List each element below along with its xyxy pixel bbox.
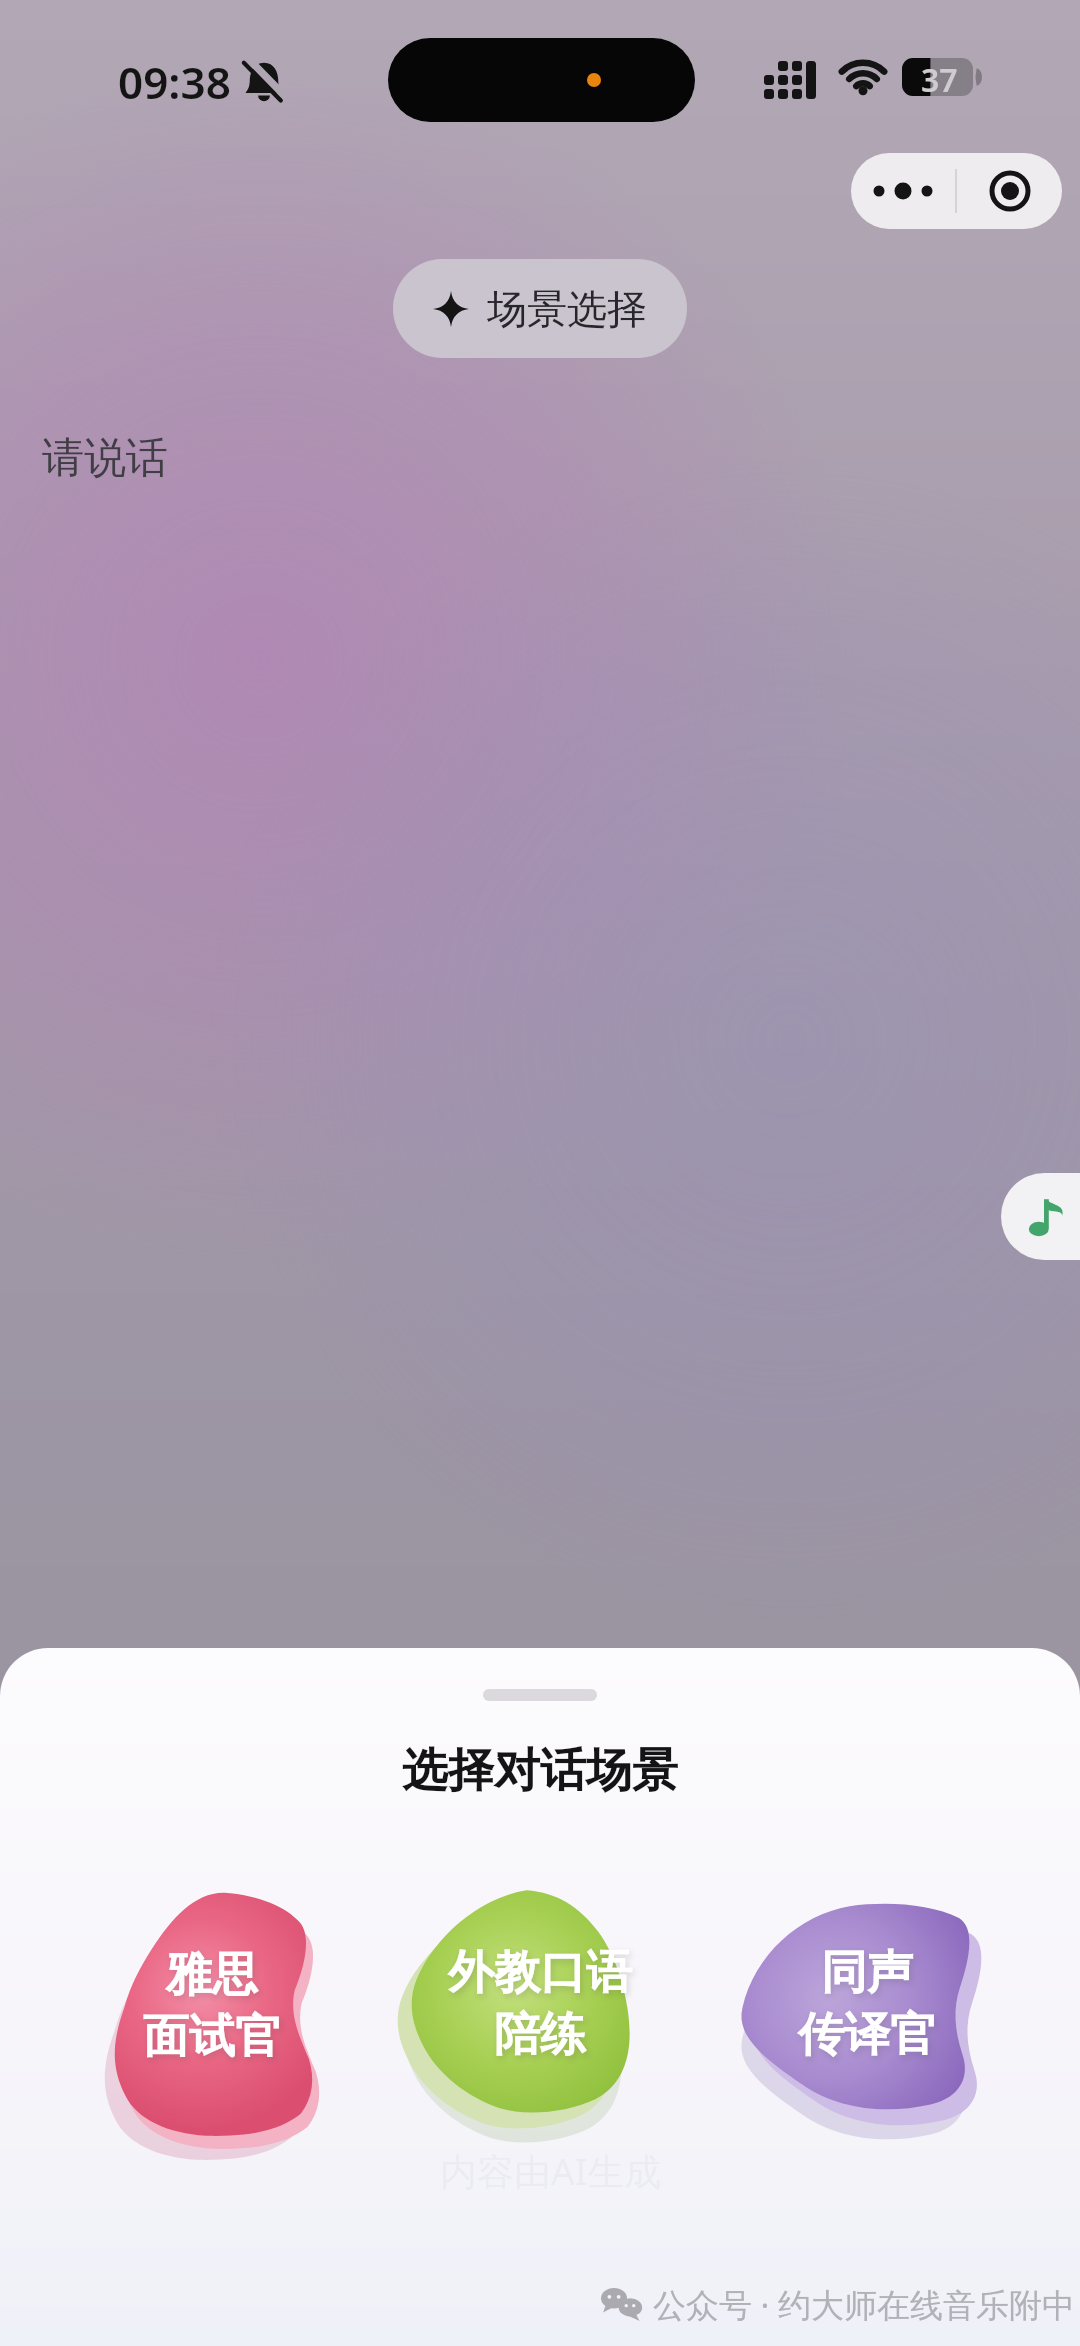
- staticText: 雅思: [166, 1946, 258, 2004]
- staticText: 外教口语: [448, 1944, 632, 2002]
- staticText: 场景选择: [487, 284, 647, 334]
- staticText: 09:38: [118, 52, 231, 112]
- staticText: 传译官: [798, 2006, 936, 2064]
- button[interactable]: 雅思: [111, 1893, 315, 2137]
- staticText: 面试官: [143, 2008, 281, 2066]
- button[interactable]: 同声: [740, 1902, 978, 2114]
- button[interactable]: [851, 153, 955, 229]
- button[interactable]: [957, 153, 1062, 229]
- staticText: 37: [921, 58, 958, 98]
- button[interactable]: 外教口语: [411, 1889, 633, 2115]
- staticText: 选择对话场景: [402, 1742, 678, 1800]
- staticText: 公众号 · 约大师在线音乐附中: [653, 2282, 1076, 2327]
- staticText: 陪练: [494, 2006, 586, 2064]
- staticText: 请说话: [42, 432, 168, 485]
- button[interactable]: [1001, 1173, 1080, 1260]
- staticText: 同声: [821, 1944, 913, 2002]
- button[interactable]: 场景选择: [393, 259, 687, 358]
